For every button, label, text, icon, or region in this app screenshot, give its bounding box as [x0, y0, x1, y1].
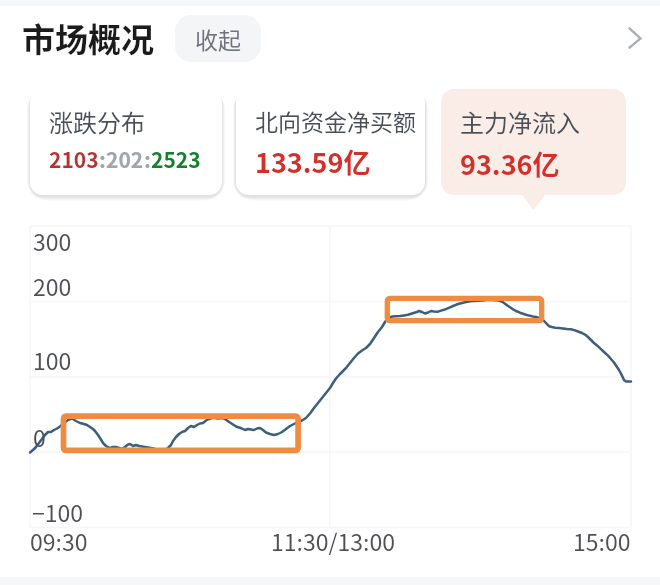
staticText: 涨跌分布 [49, 104, 145, 139]
button[interactable]: Expand market overview [615, 18, 655, 58]
staticText: 收起 [195, 22, 241, 55]
staticText: 200 [33, 269, 72, 302]
button[interactable]: 主力净流入 [441, 89, 626, 195]
staticText: 11:30/13:00 [271, 524, 395, 557]
staticText: : [144, 144, 151, 174]
staticText: 202 [106, 144, 144, 174]
button[interactable]: 收起 [175, 15, 261, 62]
staticText: 北向资金净买额 [255, 104, 416, 137]
staticText: 主力净流入 [460, 104, 580, 139]
staticText: 2523 [151, 144, 201, 174]
staticText: 15:00 [573, 524, 631, 557]
staticText: −100 [32, 495, 84, 528]
button[interactable]: 涨跌分布 [30, 89, 222, 195]
button[interactable]: 北向资金净买额 [236, 89, 425, 195]
staticText: 09:30 [30, 524, 88, 557]
staticText: 2103 [49, 144, 99, 174]
staticText: : [99, 144, 106, 174]
staticText: 市场概况 [22, 14, 154, 62]
staticText: 0 [33, 420, 46, 453]
staticText: 93.36亿 [460, 144, 560, 183]
staticText: 100 [33, 343, 72, 376]
staticText: 300 [33, 224, 72, 257]
staticText: 133.59亿 [255, 142, 371, 181]
